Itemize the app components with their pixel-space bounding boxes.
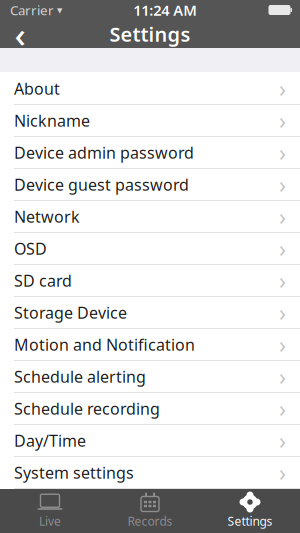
button[interactable]: Live [0,489,100,533]
staticText: Settings [109,21,190,47]
staticText: Others [14,494,66,515]
staticText: › [279,105,286,135]
button[interactable]: Others [0,489,300,521]
staticText: Storage Device [14,302,127,323]
staticText: › [279,73,286,103]
button[interactable]: Day/Time [0,425,300,457]
staticText: › [279,169,286,199]
staticText: › [279,393,286,423]
staticText: Schedule recording [14,398,160,419]
staticText: ‹ [14,11,25,57]
button[interactable]: SD card [0,265,300,297]
staticText: › [279,297,286,327]
staticText: › [279,201,286,231]
button[interactable]: System settings [0,457,300,489]
staticText: › [279,137,286,167]
staticText: ▾ [54,4,62,16]
button[interactable]: Device admin password [0,137,300,169]
staticText: › [279,361,286,391]
staticText: › [279,329,286,359]
button[interactable]: Motion and Notification [0,329,300,361]
staticText: Nickname [14,110,90,131]
staticText: Settings [227,513,272,529]
staticText: Motion and Notification [14,334,195,355]
button[interactable]: Nickname [0,105,300,137]
staticText: System settings [14,462,134,483]
button[interactable]: Back [0,20,40,48]
staticText: 11:24 AM [133,0,197,20]
button[interactable]: Records [100,489,200,533]
staticText: Records [127,513,172,529]
button[interactable]: Device guest password [0,169,300,201]
button[interactable]: Storage Device [0,297,300,329]
button[interactable]: About [0,73,300,105]
staticText: Device guest password [14,174,189,195]
button[interactable]: Schedule recording [0,393,300,425]
staticText: Carrier [10,1,54,19]
button[interactable]: OSD [0,233,300,265]
staticText: › [279,457,286,487]
staticText: About [14,78,60,99]
staticText: SD card [14,270,72,291]
staticText: Day/Time [14,430,86,451]
button[interactable]: Network [0,201,300,233]
staticText: › [279,265,286,295]
staticText: › [279,233,286,263]
staticText: Schedule alerting [14,366,146,387]
staticText: Device admin password [14,142,194,163]
button[interactable]: Settings [200,489,300,533]
button[interactable]: Schedule alerting [0,361,300,393]
staticText: Network [14,206,80,227]
staticText: › [279,425,286,455]
staticText: OSD [14,238,47,259]
staticText: Live [39,513,61,529]
